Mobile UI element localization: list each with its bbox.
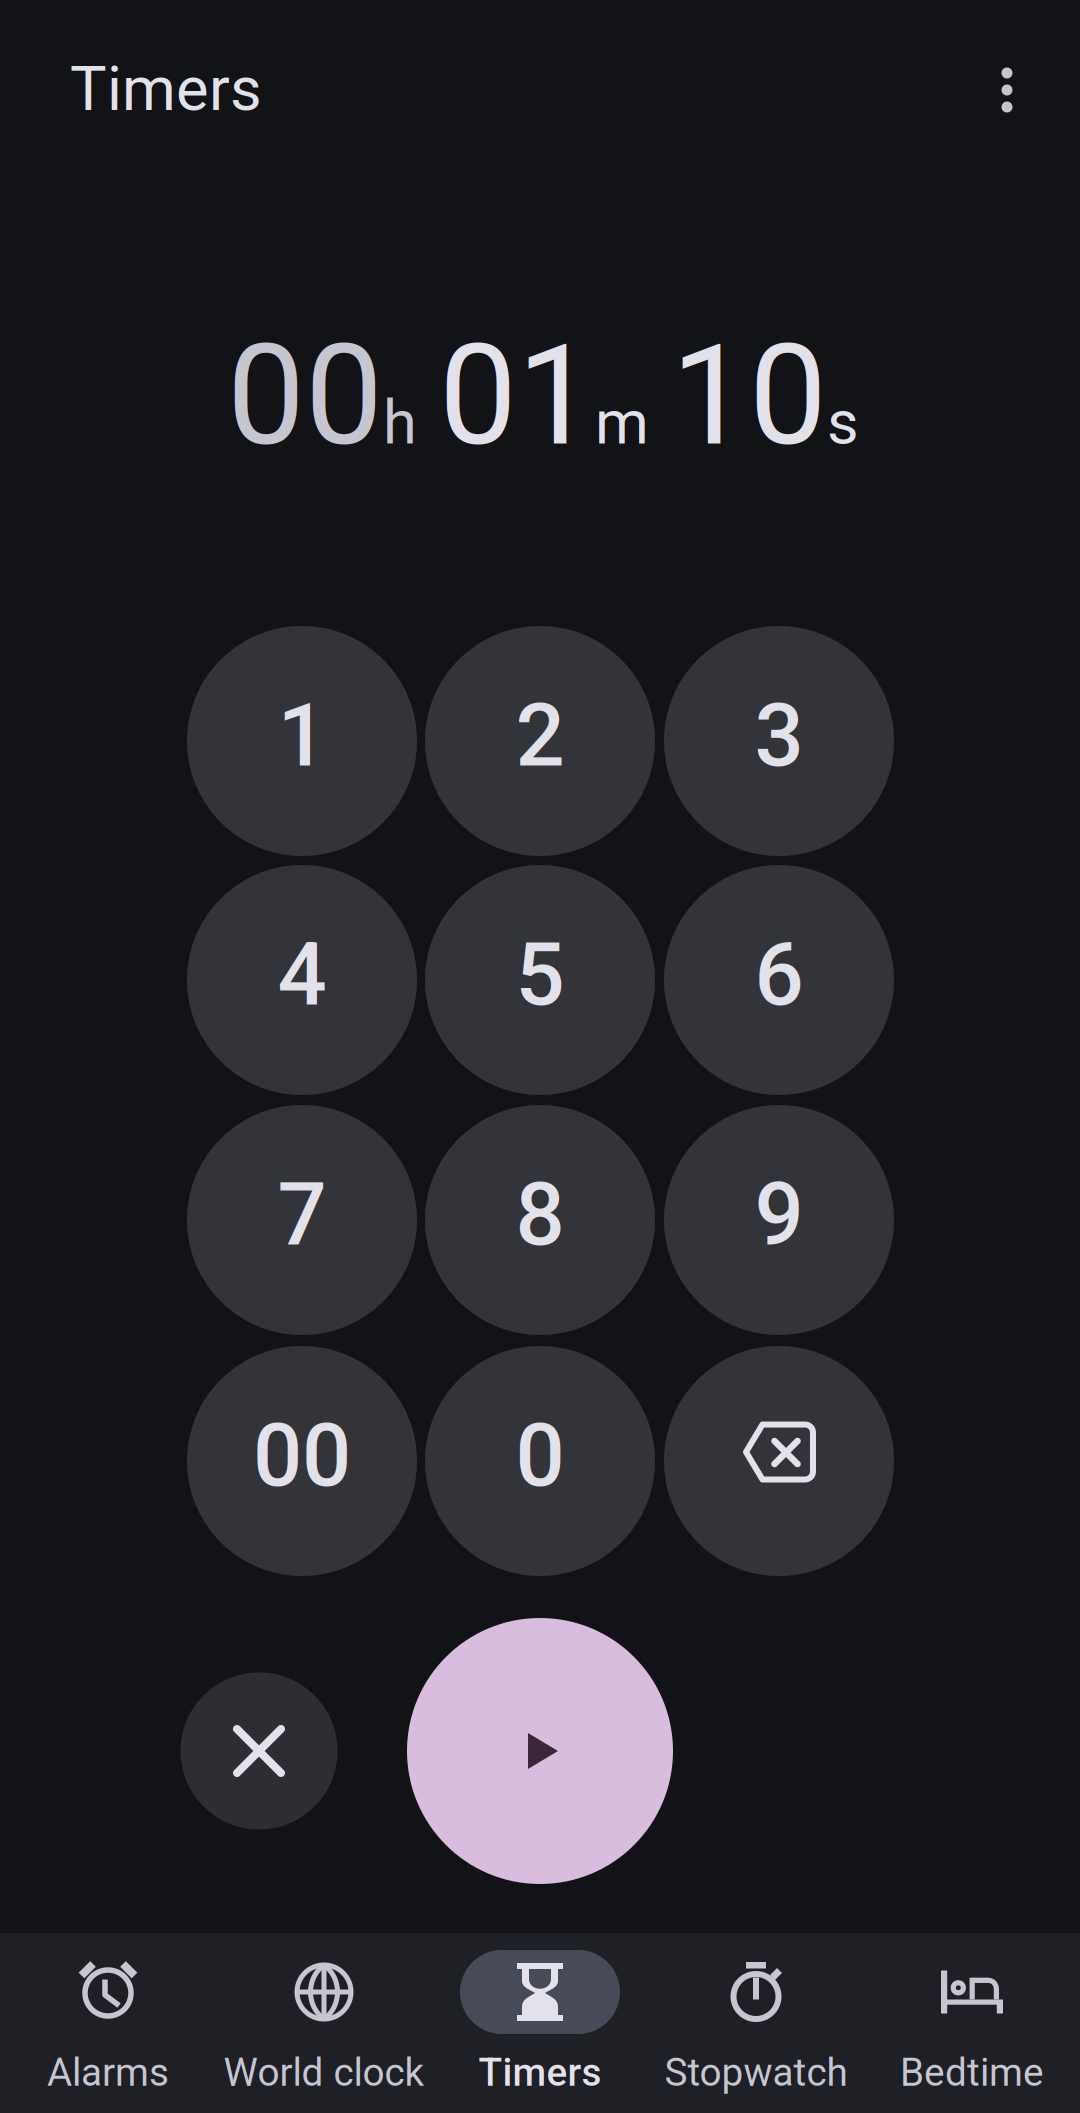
button[interactable]: 2: [425, 626, 655, 856]
button[interactable]: 00: [187, 1346, 417, 1576]
button[interactable]: Stopwatch: [648, 1933, 864, 2113]
button[interactable]: Alarms: [0, 1933, 216, 2113]
button[interactable]: 0: [425, 1346, 655, 1576]
staticText: m: [595, 386, 649, 458]
staticText: 9: [754, 1164, 803, 1266]
staticText: World clock: [223, 2050, 424, 2095]
button[interactable]: Timers: [432, 1933, 648, 2113]
staticText: 8: [515, 1164, 564, 1266]
button[interactable]: 6: [664, 865, 894, 1095]
button[interactable]: 1: [187, 626, 417, 856]
button[interactable]: Start timer: [407, 1618, 673, 1884]
staticText: 4: [277, 924, 326, 1026]
button[interactable]: More options: [952, 35, 1062, 145]
staticText: s: [827, 386, 859, 458]
button[interactable]: 5: [425, 865, 655, 1095]
staticText: 10: [671, 315, 827, 477]
staticText: Bedtime: [900, 2050, 1044, 2095]
staticText: Alarms: [47, 2050, 169, 2095]
staticText: 01: [439, 315, 595, 477]
staticText: 0: [515, 1405, 564, 1507]
staticText: Timers: [70, 53, 262, 125]
staticText: 3: [754, 685, 803, 787]
staticText: 1: [277, 685, 326, 787]
button[interactable]: 8: [425, 1105, 655, 1335]
staticText: Stopwatch: [664, 2050, 847, 2095]
button[interactable]: 7: [187, 1105, 417, 1335]
button[interactable]: Bedtime: [864, 1933, 1080, 2113]
staticText: 2: [515, 685, 564, 787]
staticText: 00: [227, 315, 383, 477]
button[interactable]: 9: [664, 1105, 894, 1335]
staticText: 7: [277, 1164, 326, 1266]
staticText: 00: [253, 1405, 351, 1507]
staticText: 6: [754, 924, 803, 1026]
staticText: Timers: [478, 2050, 601, 2095]
button[interactable]: Delete: [664, 1346, 894, 1576]
button[interactable]: 3: [664, 626, 894, 856]
button[interactable]: Cancel: [180, 1672, 337, 1829]
button[interactable]: 4: [187, 865, 417, 1095]
staticText: h: [383, 386, 417, 458]
staticText: 5: [515, 924, 564, 1026]
button[interactable]: World clock: [216, 1933, 432, 2113]
